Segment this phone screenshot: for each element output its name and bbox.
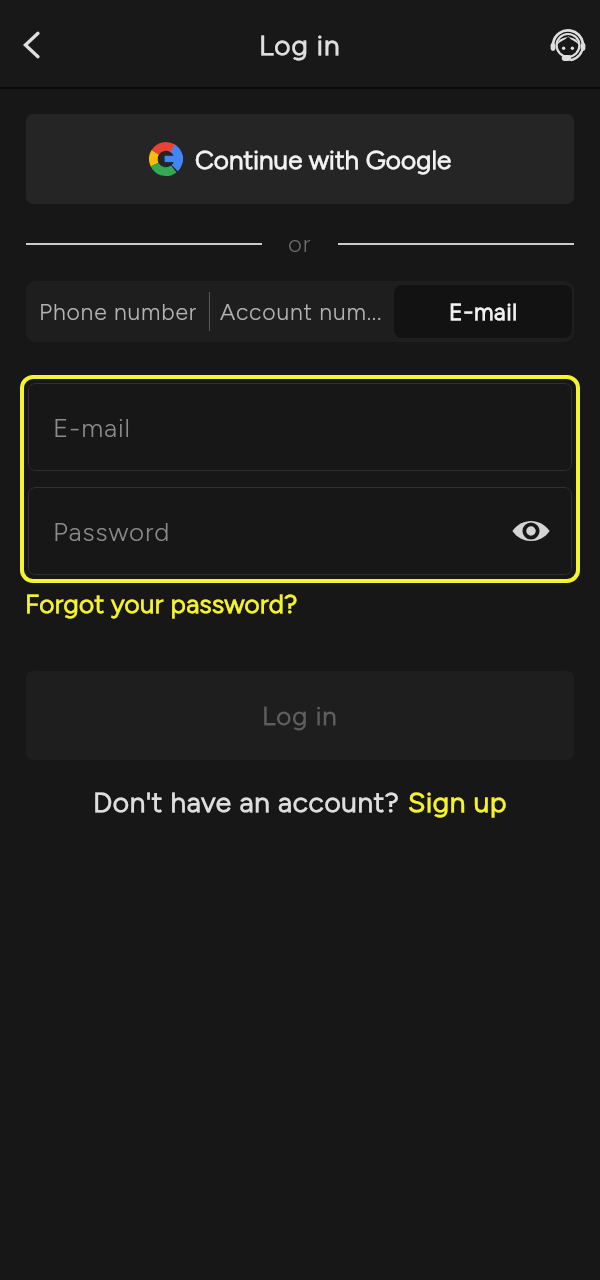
button[interactable]: Forgot your password? bbox=[25, 588, 298, 619]
staticText: E-mail bbox=[53, 412, 131, 443]
button[interactable]: Password bbox=[28, 487, 572, 575]
staticText: Password bbox=[53, 516, 171, 547]
staticText: Log in bbox=[262, 700, 338, 731]
staticText: Continue with Google bbox=[195, 144, 452, 175]
button[interactable]: Back bbox=[6, 19, 58, 71]
button[interactable]: Sign up bbox=[408, 785, 508, 819]
button[interactable]: Account num... bbox=[210, 281, 392, 342]
staticText: E-mail bbox=[449, 298, 518, 326]
staticText: Phone number bbox=[39, 298, 197, 326]
staticText: or bbox=[288, 229, 312, 258]
button[interactable]: Continue with Google bbox=[26, 114, 574, 204]
staticText: Forgot your password? bbox=[25, 588, 298, 619]
staticText: Don't have an account? bbox=[93, 785, 408, 819]
button[interactable]: E-mail bbox=[394, 285, 572, 338]
button[interactable]: Show password bbox=[508, 508, 554, 554]
staticText: Account num... bbox=[220, 298, 383, 326]
staticText: Log in bbox=[259, 28, 341, 62]
button[interactable]: E-mail bbox=[28, 383, 572, 471]
button[interactable]: Phone number bbox=[26, 281, 209, 342]
button[interactable]: Customer support bbox=[542, 19, 594, 71]
button[interactable]: Log in bbox=[26, 671, 574, 760]
